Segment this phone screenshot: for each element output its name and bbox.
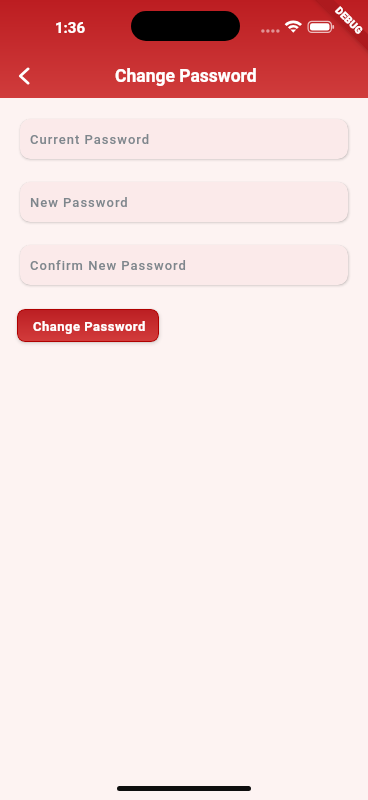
staticText: Current Password (30, 132, 151, 147)
button[interactable]: Confirm New Password (20, 245, 348, 285)
staticText: 1:36 (55, 19, 86, 37)
button[interactable]: Current Password (20, 119, 348, 159)
staticText: DEBUG (333, 5, 365, 37)
staticText: New Password (30, 195, 129, 210)
staticText: Change Password (33, 319, 146, 334)
button[interactable]: New Password (20, 182, 348, 222)
button[interactable]: Back (0, 52, 48, 98)
staticText: Change Password (115, 66, 257, 87)
other: Debug banner (278, 0, 368, 90)
staticText: Confirm New Password (30, 258, 187, 273)
button[interactable]: Change Password (18, 310, 158, 341)
